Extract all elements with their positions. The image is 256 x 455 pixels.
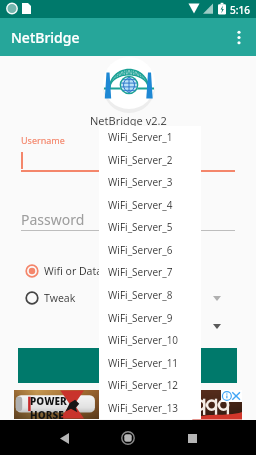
staticText: WiFi_Server_9 bbox=[108, 311, 173, 325]
staticText: 5:16 bbox=[230, 3, 250, 17]
staticText: WiFi_Server_5 bbox=[108, 220, 173, 234]
staticText: WiFi_Server_11 bbox=[108, 356, 179, 370]
button[interactable]: Connect bbox=[18, 348, 237, 383]
staticText: WiFi_Server_3 bbox=[108, 175, 173, 189]
button[interactable]: WiFi_Server_2 bbox=[99, 149, 201, 171]
staticText: WiFi_Server_7 bbox=[108, 265, 173, 279]
staticText: WiFi_Server_6 bbox=[108, 243, 173, 257]
button[interactable]: Open dropdown bbox=[210, 291, 224, 305]
button[interactable]: WiFi_Server_1 bbox=[99, 126, 201, 148]
staticText: WiFi_Server_1 bbox=[108, 130, 173, 144]
staticText: WiFi_Server_4 bbox=[108, 198, 173, 212]
button[interactable]: Tweak bbox=[25, 287, 76, 309]
button[interactable]: WiFi_Server_11 bbox=[99, 352, 201, 374]
staticText: WiFi_Server_13 bbox=[108, 401, 179, 415]
button[interactable]: WiFi_Server_4 bbox=[99, 194, 201, 216]
button[interactable]: Back bbox=[48, 422, 80, 454]
button[interactable]: More options bbox=[222, 20, 256, 54]
staticText: NetBridge v2.2 bbox=[90, 113, 167, 128]
button[interactable]: WiFi_Server_10 bbox=[99, 329, 201, 351]
button[interactable]: WiFi_Server_5 bbox=[99, 216, 201, 238]
button[interactable]: WiFi_Server_9 bbox=[99, 307, 201, 329]
button[interactable]: WiFi_Server_3 bbox=[99, 171, 201, 193]
staticText: POWER bbox=[30, 394, 67, 408]
staticText: WiFi_Server_10 bbox=[108, 333, 179, 347]
staticText: HORSE bbox=[30, 408, 64, 422]
staticText: WiFi_Server_12 bbox=[108, 378, 179, 392]
staticText: Password bbox=[21, 210, 85, 229]
staticText: NetBridge bbox=[11, 28, 80, 47]
button[interactable]: WiFi_Server_13 bbox=[99, 397, 201, 419]
button[interactable]: WiFi_Server_12 bbox=[99, 374, 201, 396]
button[interactable]: Advertisement bbox=[14, 390, 242, 419]
staticText: WiFi_Server_2 bbox=[108, 153, 173, 167]
button[interactable]: Open dropdown bbox=[210, 319, 224, 333]
button[interactable]: WiFi_Server_6 bbox=[99, 239, 201, 261]
staticText: Wifi or Data) bbox=[44, 264, 106, 278]
staticText: Username bbox=[21, 134, 65, 146]
button[interactable]: Recent apps bbox=[176, 422, 208, 454]
staticText: WiFi_Server_8 bbox=[108, 288, 173, 302]
button[interactable]: WiFi_Server_8 bbox=[99, 284, 201, 306]
button[interactable]: WiFi_Server_7 bbox=[99, 261, 201, 283]
button[interactable]: Home bbox=[112, 422, 144, 454]
staticText: Tweak bbox=[44, 291, 76, 305]
button[interactable]: Wifi or Data) bbox=[25, 260, 106, 282]
